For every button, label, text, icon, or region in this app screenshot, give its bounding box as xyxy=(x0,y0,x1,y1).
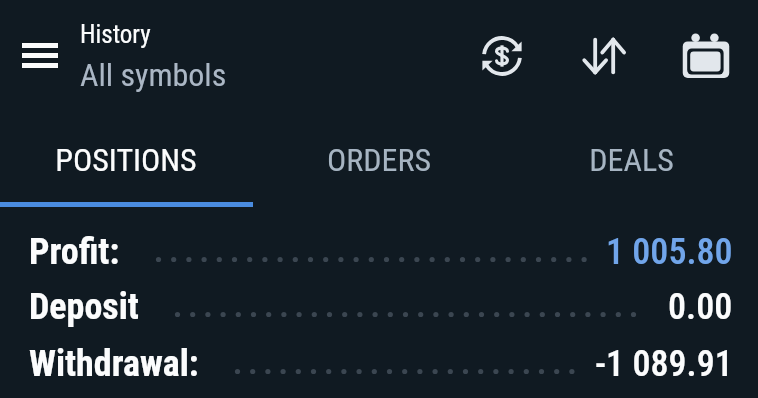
staticText: POSITIONS xyxy=(55,141,197,179)
button[interactable]: Withdrawal: xyxy=(0,336,758,391)
staticText: All symbols xyxy=(80,56,227,94)
button[interactable]: Currency exchange xyxy=(466,20,538,92)
staticText: Deposit xyxy=(29,286,139,328)
button[interactable]: Profit: xyxy=(0,224,758,279)
staticText: -1 089.91 xyxy=(595,343,733,385)
button[interactable]: POSITIONS xyxy=(0,113,252,207)
staticText: History xyxy=(80,20,151,49)
staticText: Withdrawal: xyxy=(29,343,199,385)
button[interactable]: Sort xyxy=(568,20,640,92)
staticText: Profit: xyxy=(29,231,120,273)
button[interactable]: Select date range xyxy=(670,18,742,90)
staticText: DEALS xyxy=(589,141,674,179)
staticText: 0.00 xyxy=(668,286,733,328)
button[interactable]: Deposit xyxy=(0,279,758,334)
button[interactable]: DEALS xyxy=(505,113,758,207)
staticText: ORDERS xyxy=(327,141,431,179)
staticText: 1 005.80 xyxy=(606,231,733,273)
button[interactable]: ORDERS xyxy=(252,113,505,207)
button[interactable]: Open navigation menu xyxy=(8,27,72,83)
